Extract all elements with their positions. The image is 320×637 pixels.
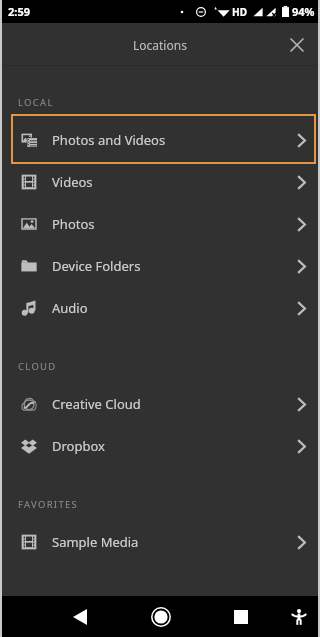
button[interactable]: Device Folders <box>2 245 318 287</box>
button[interactable]: Sample Media <box>2 521 318 563</box>
staticText: HD <box>232 5 247 19</box>
button[interactable]: Photos and Videos <box>2 119 318 161</box>
button[interactable]: Photos <box>2 203 318 245</box>
button[interactable]: Audio <box>2 287 318 329</box>
button[interactable]: Accessibility <box>280 596 318 637</box>
staticText: LOCAL <box>18 96 54 109</box>
button[interactable]: Creative Cloud <box>2 383 318 425</box>
button[interactable]: Recents <box>220 596 261 637</box>
staticText: Locations <box>133 37 187 53</box>
staticText: Sample Media <box>52 533 139 551</box>
staticText: Photos and Videos <box>52 131 166 149</box>
staticText: 94% <box>292 4 315 19</box>
staticText: Creative Cloud <box>52 395 141 413</box>
staticText: 2:59 <box>8 4 30 19</box>
staticText: Dropbox <box>52 437 105 455</box>
button[interactable]: Close <box>275 23 318 66</box>
staticText: Device Folders <box>52 257 141 275</box>
button[interactable]: Dropbox <box>2 425 318 467</box>
staticText: Audio <box>52 299 88 317</box>
button[interactable]: Videos <box>2 161 318 203</box>
staticText: CLOUD <box>18 360 57 373</box>
button[interactable]: Home <box>140 596 181 637</box>
button[interactable]: Back <box>59 596 100 637</box>
staticText: FAVORITES <box>18 498 79 511</box>
staticText: Videos <box>52 173 93 191</box>
staticText: Photos <box>52 215 95 233</box>
